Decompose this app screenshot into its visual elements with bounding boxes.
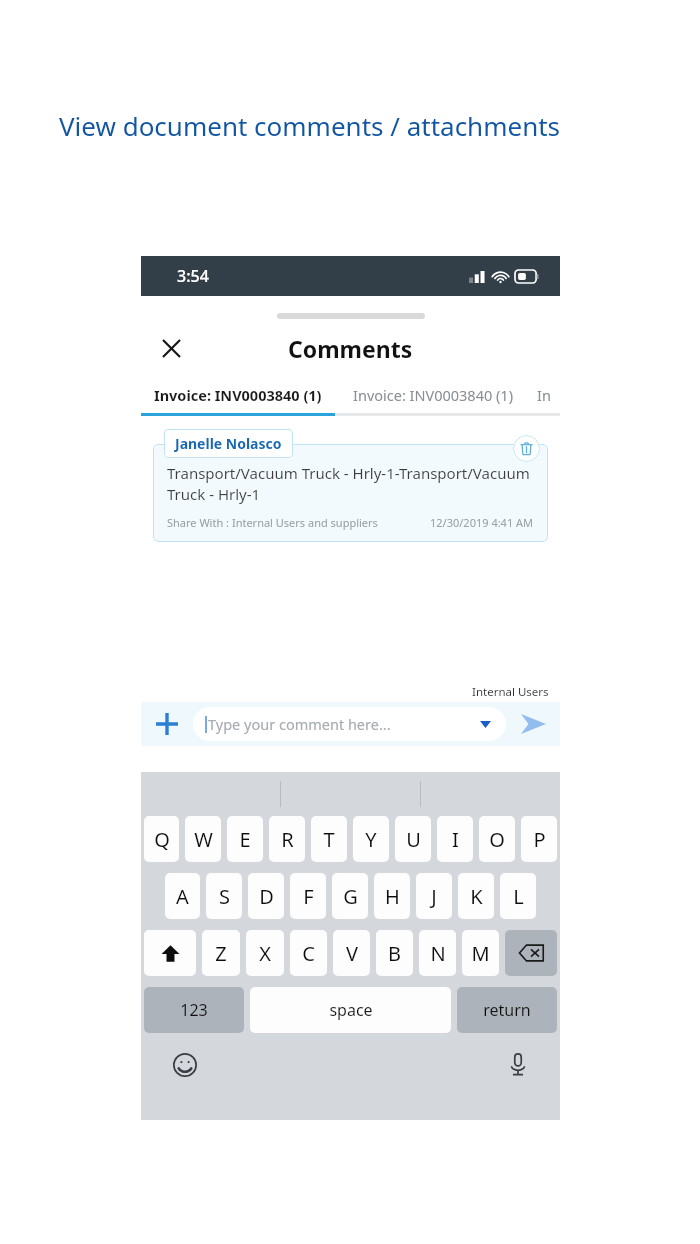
staticText: H [385, 883, 400, 910]
button[interactable]: B [376, 930, 413, 976]
button[interactable]: Send comment [506, 702, 560, 746]
button[interactable]: In [531, 377, 560, 413]
staticText: O [489, 826, 505, 853]
button[interactable]: Voice input [498, 1045, 538, 1085]
button[interactable]: Z [202, 930, 240, 976]
button[interactable]: space [250, 987, 451, 1033]
staticText: Z [215, 940, 227, 967]
button[interactable]: C [290, 930, 327, 976]
button[interactable]: Choose audience [470, 709, 500, 739]
staticText: K [470, 883, 483, 910]
staticText: C [302, 940, 315, 967]
staticText: Janelle Nolasco [175, 434, 282, 453]
button[interactable]: I [437, 816, 473, 862]
button[interactable]: return [457, 987, 557, 1033]
button[interactable]: K [458, 873, 494, 919]
button[interactable]: Add attachment [141, 702, 193, 746]
button[interactable]: R [269, 816, 305, 862]
staticText: N [430, 940, 446, 967]
staticText: A [176, 883, 189, 910]
staticText: View document comments / attachments [59, 108, 561, 143]
button[interactable]: U [395, 816, 431, 862]
staticText: U [406, 826, 421, 853]
staticText: S [219, 883, 230, 910]
staticText: J [431, 883, 437, 910]
button[interactable]: G [332, 873, 368, 919]
button[interactable]: W [185, 816, 221, 862]
staticText: Y [365, 826, 377, 853]
staticText: Share With : Internal Users and supplier… [167, 515, 378, 530]
button[interactable]: Transport/Vacuum Truck - Hrly-1-Transpor… [153, 429, 548, 542]
staticText: W [194, 826, 213, 853]
button[interactable]: Emoji keyboard [165, 1045, 205, 1085]
staticText: B [388, 940, 401, 967]
staticText: Q [154, 826, 170, 853]
staticText: In [537, 385, 551, 405]
button[interactable]: S [206, 873, 242, 919]
button[interactable]: A [165, 873, 200, 919]
staticText: F [303, 883, 314, 910]
button[interactable]: P [521, 816, 557, 862]
button[interactable]: Q [144, 816, 179, 862]
staticText: space [329, 999, 373, 1021]
staticText: G [343, 883, 358, 910]
button[interactable]: V [333, 930, 370, 976]
staticText: V [346, 940, 358, 967]
button[interactable]: F [290, 873, 326, 919]
staticText: Transport/Vacuum Truck - Hrly-1-Transpor… [167, 463, 534, 505]
staticText: D [259, 883, 274, 910]
button[interactable]: N [419, 930, 456, 976]
staticText: R [281, 826, 294, 853]
staticText: X [259, 940, 271, 967]
staticText: return [483, 999, 531, 1021]
staticText: I [452, 826, 459, 853]
staticText: M [471, 940, 490, 967]
button[interactable]: Backspace [505, 930, 557, 976]
button[interactable]: M [462, 930, 499, 976]
button[interactable]: Invoice: INV0003840 (1) [141, 377, 335, 413]
button[interactable]: J [416, 873, 452, 919]
staticText: L [513, 883, 524, 910]
staticText: 12/30/2019 4:41 AM [430, 515, 534, 530]
button[interactable]: H [374, 873, 410, 919]
staticText: E [239, 826, 251, 853]
staticText: Invoice: INV0003840 (1) [154, 385, 322, 405]
button[interactable]: L [500, 873, 536, 919]
button[interactable]: X [246, 930, 284, 976]
button[interactable]: Invoice: INV0003840 (1) [335, 377, 531, 413]
staticText: P [533, 826, 546, 853]
staticText: Invoice: INV0003840 (1) [353, 385, 514, 405]
button[interactable]: Delete comment [513, 435, 540, 462]
button[interactable]: Type your comment here... [193, 707, 506, 741]
button[interactable]: E [227, 816, 263, 862]
button[interactable]: 123 [144, 987, 244, 1033]
button[interactable]: D [248, 873, 284, 919]
button[interactable]: Shift [144, 930, 196, 976]
staticText: 123 [180, 999, 208, 1021]
staticText: T [323, 826, 335, 853]
button[interactable]: T [311, 816, 347, 862]
button[interactable]: O [479, 816, 515, 862]
staticText: 3:54 [177, 265, 209, 287]
staticText: Internal Users [472, 684, 549, 700]
button[interactable]: Y [353, 816, 389, 862]
staticText: Comments [288, 333, 413, 364]
staticText: Type your comment here... [208, 714, 391, 734]
button[interactable]: Close [149, 326, 193, 370]
